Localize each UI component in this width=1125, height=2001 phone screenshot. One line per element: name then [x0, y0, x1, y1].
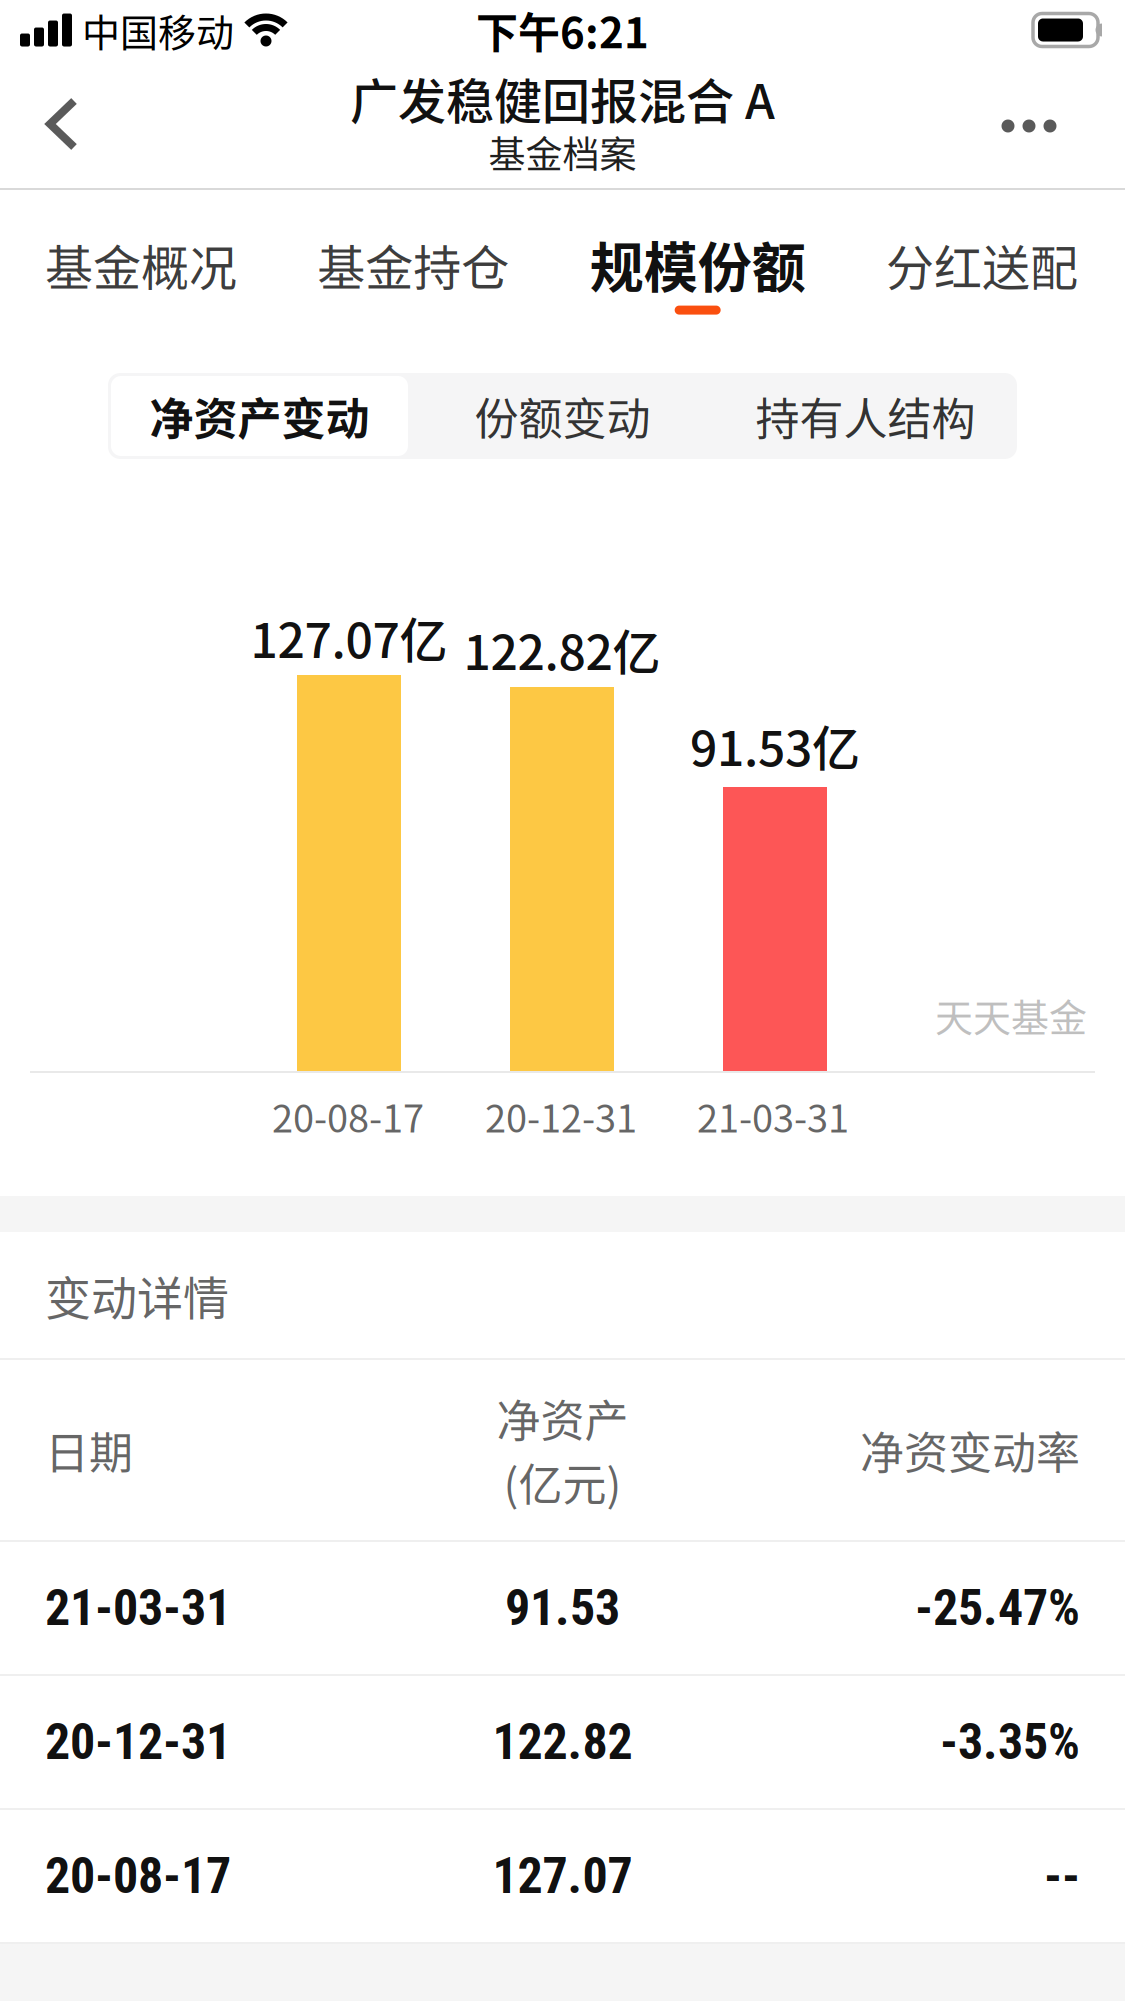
staticText: 122.82亿 — [463, 614, 660, 684]
button[interactable]: 净资产变动 — [108, 373, 411, 459]
staticText: 127.07亿 — [250, 602, 447, 672]
button[interactable]: 份额变动 — [411, 373, 714, 459]
staticText: 基金概况 — [45, 230, 237, 299]
staticText: 中国移动 — [82, 2, 234, 57]
staticText: 净资变动率 — [860, 1418, 1080, 1482]
staticText: 天天基金 — [935, 987, 1087, 1042]
button[interactable]: 分红送配 — [886, 230, 1078, 310]
staticText: 变动详情 — [45, 1262, 229, 1328]
staticText: 20-12-31 — [485, 1088, 637, 1143]
staticText: 20-08-17 — [45, 1847, 231, 1905]
staticText: 127.07 — [492, 1847, 632, 1905]
staticText: 下午6:21 — [476, 0, 649, 60]
staticText: 分红送配 — [886, 230, 1078, 299]
staticText: -- — [1044, 1847, 1080, 1905]
staticText: 基金持仓 — [317, 230, 509, 299]
staticText: 份额变动 — [474, 384, 650, 448]
staticText: 净资产 — [496, 1386, 628, 1450]
button[interactable]: More — [971, 99, 1086, 152]
staticText: 日期 — [45, 1418, 133, 1482]
staticText: 122.82 — [492, 1713, 632, 1771]
staticText: 净资产变动 — [149, 384, 369, 448]
staticText: 基金档案 — [488, 125, 636, 179]
staticText: -25.47% — [915, 1579, 1080, 1637]
button[interactable]: 规模份额 — [590, 225, 806, 315]
staticText: 91.53 — [505, 1579, 620, 1637]
staticText: 21-03-31 — [697, 1088, 849, 1143]
staticText: 91.53亿 — [690, 710, 860, 780]
button[interactable]: 持有人结构 — [714, 373, 1017, 459]
button[interactable]: Back — [0, 88, 102, 160]
staticText: 持有人结构 — [755, 384, 975, 448]
staticText: (亿元) — [503, 1450, 621, 1514]
button[interactable]: 基金概况 — [45, 230, 237, 310]
staticText: -3.35% — [940, 1713, 1080, 1771]
staticText: 21-03-31 — [45, 1579, 231, 1637]
staticText: 广发稳健回报混合 A — [350, 63, 775, 133]
staticText: 20-12-31 — [45, 1713, 231, 1771]
button[interactable]: 基金持仓 — [317, 230, 509, 310]
staticText: 规模份额 — [590, 225, 806, 304]
staticText: 20-08-17 — [272, 1088, 424, 1143]
